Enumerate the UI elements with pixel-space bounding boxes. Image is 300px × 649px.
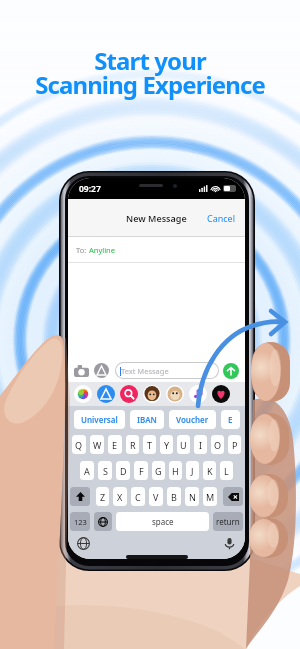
button[interactable]: D bbox=[116, 461, 130, 480]
staticText: D bbox=[120, 465, 127, 477]
staticText: C bbox=[135, 491, 141, 503]
button[interactable]: T bbox=[143, 435, 156, 454]
staticText: R bbox=[130, 439, 136, 451]
button[interactable]: Text Message bbox=[116, 363, 218, 378]
staticText: E bbox=[228, 414, 233, 425]
staticText: P bbox=[232, 439, 238, 451]
button[interactable]: X bbox=[113, 487, 127, 506]
staticText: X bbox=[117, 491, 123, 503]
button[interactable]: App Store bbox=[97, 385, 115, 403]
staticText: New Message bbox=[126, 212, 187, 224]
button[interactable] bbox=[94, 512, 112, 531]
button[interactable]: Z bbox=[96, 487, 109, 506]
button[interactable]: U bbox=[177, 435, 190, 454]
button[interactable] bbox=[223, 487, 243, 506]
button[interactable]: Send bbox=[223, 363, 239, 379]
button[interactable]: IBAN bbox=[130, 410, 164, 429]
staticText: O bbox=[214, 439, 222, 451]
button[interactable]: S bbox=[98, 461, 112, 480]
button[interactable]: P bbox=[228, 435, 241, 454]
button[interactable]: Memoji bbox=[143, 385, 161, 403]
staticText: Anyline bbox=[89, 245, 115, 255]
button[interactable]: W bbox=[90, 435, 104, 454]
button[interactable]: Y bbox=[160, 435, 173, 454]
button[interactable]: 123 bbox=[70, 512, 90, 531]
staticText: Start your Scanning Experience bbox=[35, 44, 265, 101]
staticText: F bbox=[139, 465, 144, 477]
staticText: return bbox=[216, 516, 240, 527]
button[interactable]: B bbox=[167, 487, 181, 506]
staticText: Voucher bbox=[176, 414, 209, 425]
button[interactable]: Camera bbox=[74, 365, 89, 377]
button[interactable]: I bbox=[194, 435, 207, 454]
staticText: space bbox=[152, 516, 174, 527]
button[interactable]: O bbox=[211, 435, 224, 454]
staticText: G bbox=[155, 465, 162, 477]
staticText: K bbox=[207, 465, 213, 477]
button[interactable]: H bbox=[169, 461, 182, 480]
button[interactable]: C bbox=[131, 487, 145, 506]
button[interactable]: Q bbox=[72, 435, 86, 454]
button[interactable]: E bbox=[108, 435, 122, 454]
button[interactable]: space bbox=[116, 512, 209, 531]
button[interactable]: Cancel bbox=[207, 212, 236, 224]
button[interactable]: V bbox=[149, 487, 163, 506]
staticText: Text Message bbox=[121, 366, 169, 376]
button[interactable]: Photos bbox=[74, 385, 92, 403]
button[interactable]: L bbox=[220, 461, 233, 480]
staticText: To: bbox=[76, 245, 89, 255]
button[interactable]: Emoji keyboard bbox=[77, 537, 90, 550]
button[interactable]: Dictate bbox=[223, 537, 236, 550]
staticText: 09:27 bbox=[79, 183, 101, 195]
button[interactable]: E bbox=[221, 410, 240, 429]
staticText: E bbox=[112, 439, 118, 451]
staticText: Y bbox=[164, 439, 170, 451]
button[interactable]: F bbox=[134, 461, 148, 480]
button[interactable]: J bbox=[186, 461, 199, 480]
staticText: I bbox=[199, 439, 203, 451]
staticText: W bbox=[93, 439, 102, 451]
button[interactable]: R bbox=[126, 435, 139, 454]
button[interactable]: Digital Touch bbox=[212, 385, 230, 403]
button[interactable]: N bbox=[185, 487, 199, 506]
staticText: L bbox=[224, 465, 229, 477]
staticText: N bbox=[189, 491, 196, 503]
staticText: 123 bbox=[74, 517, 87, 527]
staticText: U bbox=[180, 439, 187, 451]
staticText: A bbox=[84, 465, 90, 477]
button[interactable]: G bbox=[152, 461, 165, 480]
staticText: IBAN bbox=[137, 414, 157, 425]
button[interactable]: App Store bbox=[94, 363, 109, 378]
staticText: Universal bbox=[81, 414, 118, 425]
button[interactable]: Memoji bbox=[166, 385, 184, 403]
staticText: M bbox=[206, 491, 215, 503]
button[interactable] bbox=[70, 487, 90, 506]
button[interactable]: Universal bbox=[74, 410, 125, 429]
button[interactable]: Images bbox=[120, 385, 138, 403]
staticText: B bbox=[171, 491, 177, 503]
button[interactable]: return bbox=[213, 512, 243, 531]
staticText: T bbox=[147, 439, 153, 451]
staticText: S bbox=[103, 465, 108, 477]
button[interactable]: Voucher bbox=[169, 410, 216, 429]
staticText: H bbox=[172, 465, 179, 477]
staticText: Q bbox=[75, 439, 83, 451]
button[interactable]: K bbox=[203, 461, 216, 480]
button[interactable]: Music bbox=[189, 385, 207, 403]
staticText: Z bbox=[100, 491, 106, 503]
button[interactable]: M bbox=[203, 487, 217, 506]
button[interactable]: A bbox=[80, 461, 94, 480]
staticText: V bbox=[153, 491, 159, 503]
staticText: J bbox=[191, 465, 194, 477]
